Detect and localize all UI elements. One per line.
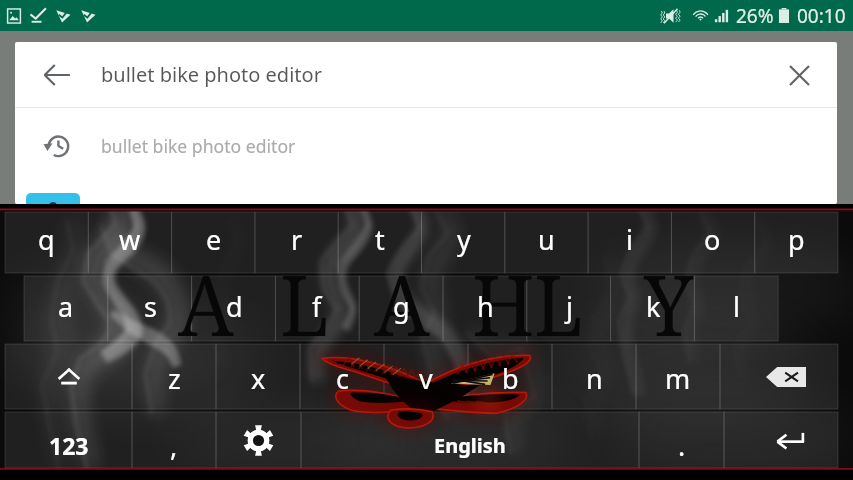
staticText: 26% xyxy=(736,3,774,29)
button[interactable]: k xyxy=(611,276,695,341)
button[interactable]: c xyxy=(300,344,384,409)
button[interactable]: x xyxy=(216,344,300,409)
button[interactable]: 123 xyxy=(5,412,132,468)
staticText: a xyxy=(58,288,74,325)
button[interactable]: English xyxy=(301,412,639,468)
button[interactable]: bullet bike photo editor xyxy=(15,108,837,184)
button[interactable]: v xyxy=(384,344,468,409)
button[interactable]: j xyxy=(527,276,611,341)
staticText: p xyxy=(788,221,805,258)
staticText: k xyxy=(646,288,661,325)
button[interactable]: g xyxy=(359,276,443,341)
staticText: f xyxy=(312,288,322,325)
button[interactable]: y xyxy=(422,212,505,273)
button[interactable]: d xyxy=(192,276,276,341)
staticText: . xyxy=(678,427,686,464)
button[interactable]: s xyxy=(108,276,192,341)
staticText: , xyxy=(170,427,178,464)
button[interactable]: q xyxy=(5,212,88,273)
staticText: r xyxy=(291,221,303,258)
button[interactable]: . xyxy=(639,412,724,468)
staticText: x xyxy=(251,360,266,397)
staticText: 00:10 xyxy=(797,3,846,29)
button[interactable]: l xyxy=(694,276,778,341)
staticText: o xyxy=(704,221,721,258)
staticText: b xyxy=(502,360,519,397)
button[interactable]: a xyxy=(24,276,108,341)
staticText: w xyxy=(119,221,141,258)
staticText: v xyxy=(419,360,433,397)
button[interactable]: r xyxy=(255,212,338,273)
button[interactable]: b xyxy=(468,344,552,409)
staticText: bullet bike photo editor xyxy=(101,134,296,158)
staticText: n xyxy=(586,360,603,397)
button[interactable]: z xyxy=(132,344,216,409)
button[interactable]: i xyxy=(588,212,671,273)
staticText: e xyxy=(206,221,222,258)
button[interactable]: u xyxy=(505,212,588,273)
staticText: l xyxy=(733,288,740,325)
staticText: i xyxy=(626,221,633,258)
staticText: bullet bike photo editor xyxy=(101,61,322,88)
staticText: u xyxy=(538,221,555,258)
button[interactable]: w xyxy=(88,212,171,273)
button[interactable]: Enter xyxy=(724,412,838,468)
staticText: d xyxy=(226,288,243,325)
button[interactable]: e xyxy=(172,212,255,273)
staticText: g xyxy=(393,288,410,325)
button[interactable]: h xyxy=(443,276,527,341)
staticText: q xyxy=(38,221,55,258)
staticText: h xyxy=(477,288,494,325)
staticText: s xyxy=(144,288,157,325)
button[interactable]: t xyxy=(338,212,421,273)
button[interactable]: o xyxy=(671,212,754,273)
button[interactable]: Clear search xyxy=(773,49,825,101)
button[interactable]: n xyxy=(552,344,636,409)
button[interactable]: , xyxy=(132,412,216,468)
button[interactable]: Backspace xyxy=(720,344,838,409)
button[interactable]: Shift xyxy=(5,344,132,409)
staticText: English xyxy=(434,432,506,459)
staticText: y xyxy=(457,221,471,258)
staticText: z xyxy=(168,360,181,397)
staticText: j xyxy=(566,288,573,325)
staticText: t xyxy=(375,221,385,258)
button[interactable]: Settings xyxy=(216,412,301,468)
button[interactable]: p xyxy=(755,212,838,273)
button[interactable]: Back xyxy=(31,49,83,101)
staticText: 123 xyxy=(49,430,89,461)
staticText: c xyxy=(336,360,349,397)
button[interactable]: m xyxy=(636,344,720,409)
staticText: m xyxy=(665,360,691,397)
button[interactable]: f xyxy=(275,276,359,341)
